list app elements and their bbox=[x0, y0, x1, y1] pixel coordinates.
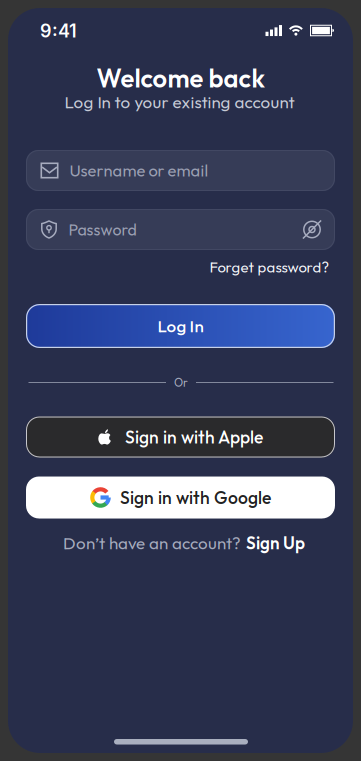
staticText: Sign in with Apple bbox=[125, 426, 263, 448]
staticText: Log In bbox=[157, 315, 203, 337]
staticText: Log In to your existing account bbox=[64, 91, 294, 113]
button[interactable]: Sign Up bbox=[246, 532, 305, 554]
button[interactable]: Forget password? bbox=[209, 257, 329, 276]
button[interactable]: Sign in with Apple bbox=[26, 416, 335, 457]
staticText: Or bbox=[174, 375, 188, 390]
staticText: 9:41 bbox=[40, 20, 77, 42]
button[interactable]: Sign in with Google bbox=[26, 476, 335, 518]
button[interactable]: Username or email bbox=[26, 150, 335, 191]
staticText: Forget password? bbox=[209, 257, 329, 276]
staticText: Welcome back bbox=[96, 62, 264, 94]
staticText: Sign in with Google bbox=[120, 486, 271, 508]
staticText: Password bbox=[68, 219, 136, 240]
staticText: Username or email bbox=[69, 160, 208, 181]
staticText: Don’t have an account? bbox=[63, 532, 241, 554]
button[interactable]: Password bbox=[26, 209, 335, 250]
staticText: Sign Up bbox=[246, 532, 305, 554]
button[interactable]: Log In bbox=[26, 304, 335, 348]
